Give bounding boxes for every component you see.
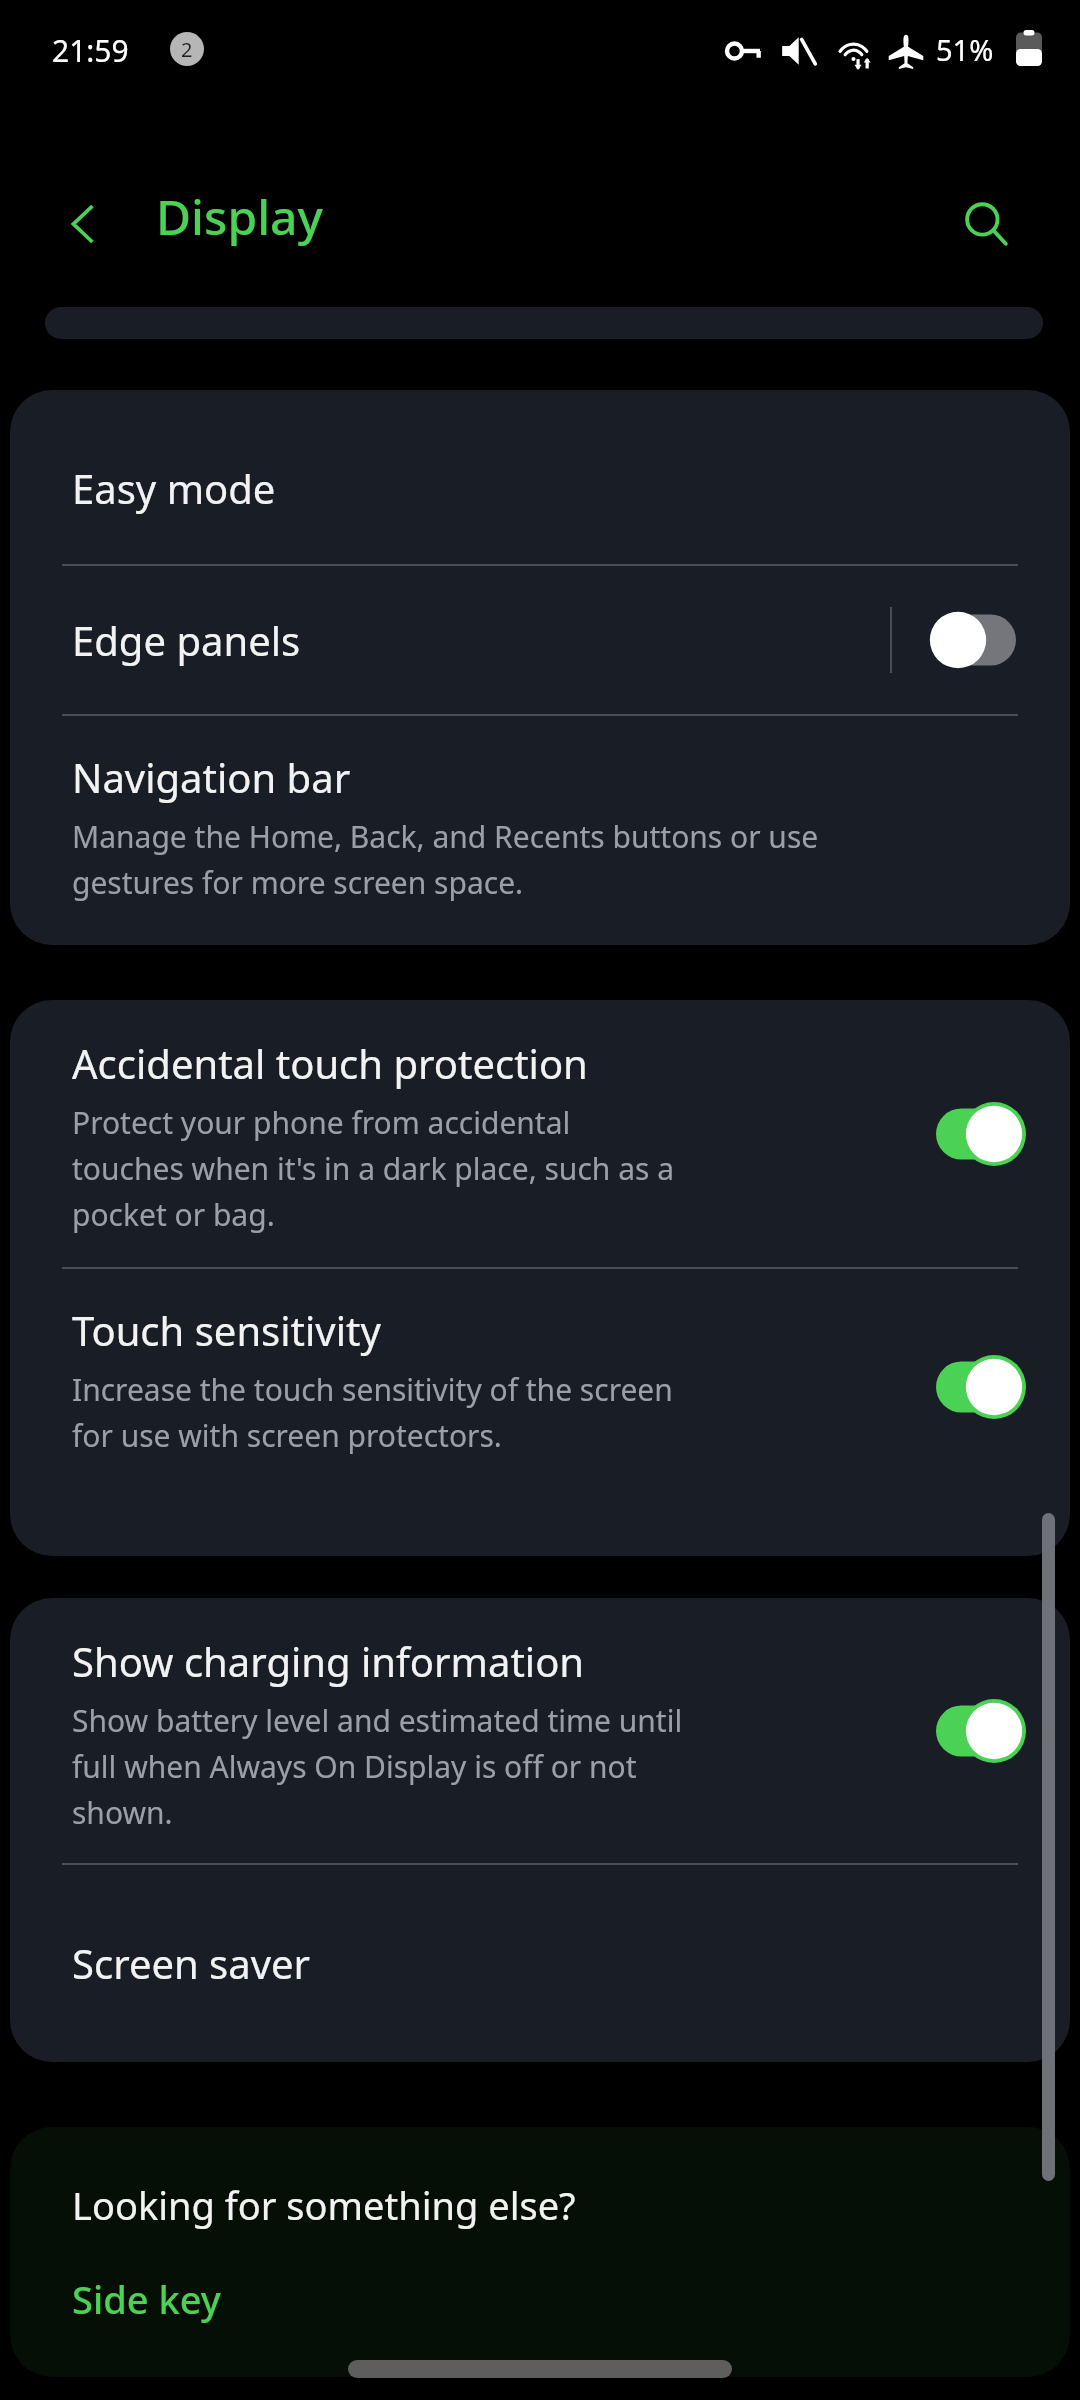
button[interactable]: Off xyxy=(926,608,1026,672)
button[interactable]: Accidental touch protection xyxy=(10,1000,1070,1267)
staticText: Looking for something else? xyxy=(72,2179,576,2231)
staticText: Screen saver xyxy=(72,1936,311,1990)
staticText: Accidental touch protection xyxy=(72,1036,588,1090)
staticText: Protect your phone from accidental touch… xyxy=(72,1102,674,1235)
staticText: 51% xyxy=(936,30,994,69)
staticText: Edge panels xyxy=(72,613,301,667)
button[interactable]: Navigation bar xyxy=(10,716,1070,945)
button[interactable]: Screen saver xyxy=(10,1865,1070,2043)
staticText: 21:59 xyxy=(52,30,129,71)
button[interactable]: Easy mode xyxy=(10,390,1070,564)
staticText: Display xyxy=(156,184,323,249)
button[interactable]: Side key xyxy=(72,2273,221,2325)
button[interactable]: Back xyxy=(40,180,128,268)
staticText: Show charging information xyxy=(72,1634,585,1688)
staticText: Touch sensitivity xyxy=(72,1303,381,1357)
staticText: Navigation bar xyxy=(72,750,351,804)
staticText: 2 xyxy=(181,36,193,63)
staticText: Easy mode xyxy=(72,461,276,515)
button[interactable]: Looking for something else? xyxy=(72,2179,576,2231)
staticText: Manage the Home, Back, and Recents butto… xyxy=(72,816,819,901)
button[interactable]: Edge panels xyxy=(10,566,1070,714)
button[interactable]: Search xyxy=(940,178,1032,270)
staticText: Show battery level and estimated time un… xyxy=(72,1700,683,1833)
button[interactable]: Touch sensitivity xyxy=(10,1269,1070,1504)
button[interactable]: On xyxy=(926,1102,1026,1166)
staticText: Increase the touch sensitivity of the sc… xyxy=(72,1369,673,1456)
button[interactable]: On xyxy=(926,1355,1026,1419)
button[interactable]: On xyxy=(926,1699,1026,1763)
staticText: Side key xyxy=(72,2273,221,2325)
button[interactable]: Show charging information xyxy=(10,1598,1070,1863)
